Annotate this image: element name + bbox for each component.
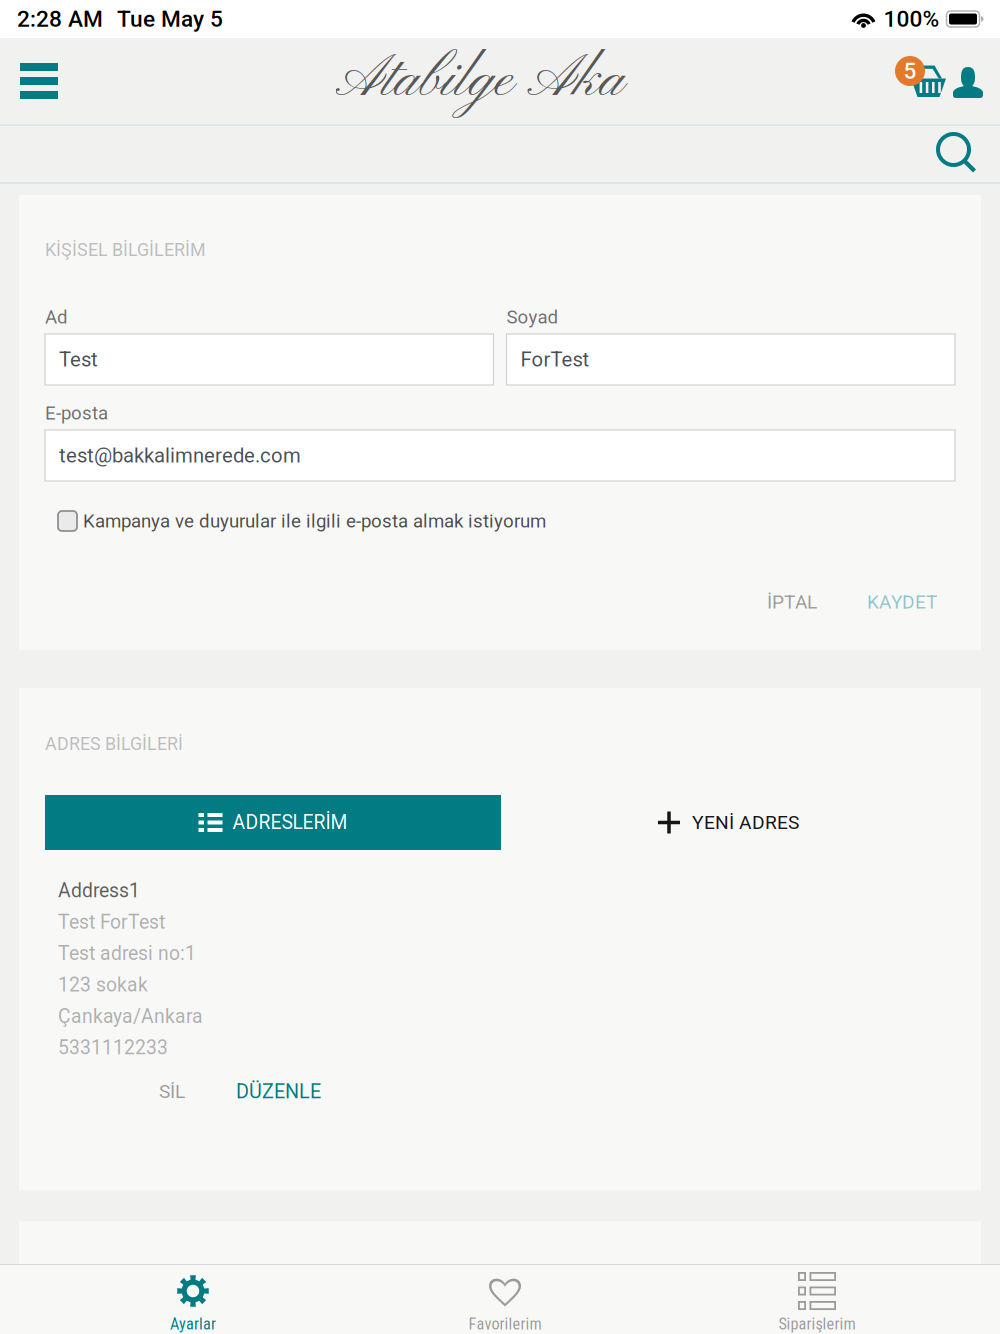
button[interactable]: Ayarlar <box>37 1265 349 1334</box>
button[interactable]: Siparişlerim <box>661 1265 973 1334</box>
staticText: Kampanya ve duyurular ile ilgili e-posta… <box>83 510 546 532</box>
staticText: Ad <box>45 306 68 328</box>
staticText: İPTAL <box>767 591 817 613</box>
button[interactable]: KAYDET <box>855 582 949 622</box>
staticText: ADRES BİLGİLERİ <box>45 733 183 754</box>
staticText: KAYDET <box>867 591 937 613</box>
staticText: YENİ ADRES <box>692 811 799 834</box>
staticText: ADRESLERİM <box>232 811 347 834</box>
staticText: Ayarlar <box>170 1314 216 1334</box>
staticText: Test <box>59 348 98 371</box>
staticText: ForTest <box>520 348 589 371</box>
button[interactable]: SİL <box>137 1071 207 1111</box>
button[interactable]: Favorilerim <box>349 1265 661 1334</box>
staticText: DÜZENLE <box>236 1080 321 1103</box>
staticText: 2:28 AM <box>17 6 103 32</box>
button[interactable]: Search <box>938 126 1000 182</box>
button[interactable]: İPTAL <box>750 582 855 622</box>
staticText: Test ForTest <box>58 911 165 933</box>
staticText: Tue May 5 <box>117 6 223 32</box>
staticText: Siparişlerim <box>778 1314 855 1334</box>
staticText: 5 <box>903 58 916 84</box>
staticText: Favorilerim <box>468 1314 541 1334</box>
staticText: Soyad <box>506 306 558 328</box>
staticText: Address1 <box>58 879 140 902</box>
button[interactable]: Account <box>945 38 1000 124</box>
button[interactable]: DÜZENLE <box>207 1071 335 1111</box>
button[interactable]: YENİ ADRES <box>658 795 799 850</box>
staticText: SİL <box>159 1080 185 1102</box>
staticText: E-posta <box>45 402 108 424</box>
button[interactable]: Cart <box>880 23 945 138</box>
staticText: Çankaya/Ankara <box>58 1005 203 1028</box>
button[interactable]: ADRESLERİM <box>45 795 501 850</box>
staticText: 123 sokak <box>58 974 148 996</box>
staticText: KİŞİSEL BİLGİLERİM <box>45 239 206 260</box>
staticText: test@bakkalimnerede.com <box>59 444 301 467</box>
button[interactable]: Menu <box>0 38 80 124</box>
staticText: Test adresi no:1 <box>58 942 196 965</box>
staticText: 100% <box>883 6 939 32</box>
staticText: Atabilge Aka <box>335 44 624 118</box>
staticText: 5331112233 <box>58 1036 168 1059</box>
